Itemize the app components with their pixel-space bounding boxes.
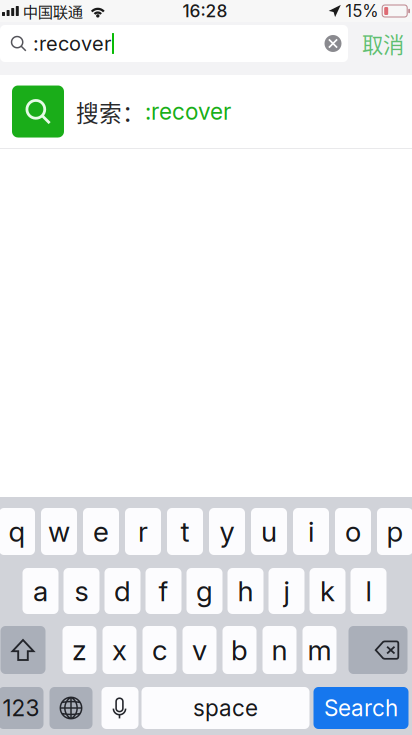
staticText: a: [33, 574, 48, 608]
button[interactable]: m: [302, 626, 336, 674]
staticText: 取消: [362, 28, 404, 59]
staticText: p: [386, 515, 403, 548]
button[interactable]: o: [335, 508, 371, 555]
staticText: b: [231, 633, 248, 667]
button[interactable]: Delete: [348, 626, 407, 674]
button[interactable]: w: [41, 508, 77, 555]
staticText: d: [114, 574, 131, 608]
button[interactable]: a: [22, 568, 58, 614]
button[interactable]: z: [62, 626, 96, 674]
button[interactable]: h: [227, 568, 263, 614]
staticText: l: [365, 574, 371, 608]
button[interactable]: Clear text: [318, 26, 348, 60]
staticText: j: [283, 574, 289, 608]
staticText: g: [196, 574, 213, 608]
button[interactable]: c: [142, 626, 176, 674]
staticText: 搜索：: [76, 95, 145, 128]
staticText: c: [152, 633, 167, 667]
button[interactable]: e: [83, 508, 119, 555]
button[interactable]: k: [309, 568, 345, 614]
button[interactable]: j: [268, 568, 304, 614]
button[interactable]: f: [145, 568, 181, 614]
staticText: u: [261, 515, 277, 548]
button[interactable]: q: [0, 508, 35, 555]
button[interactable]: p: [377, 508, 412, 555]
button[interactable]: v: [182, 626, 216, 674]
staticText: 中国联通: [23, 0, 83, 22]
staticText: x: [112, 633, 127, 667]
staticText: i: [308, 515, 314, 548]
staticText: v: [192, 633, 207, 667]
staticText: s: [74, 574, 88, 608]
staticText: w: [48, 515, 70, 548]
staticText: o: [345, 515, 361, 548]
button[interactable]: g: [186, 568, 222, 614]
button[interactable]: Shift: [0, 626, 45, 674]
staticText: n: [271, 633, 287, 667]
staticText: 15%: [345, 1, 378, 21]
button[interactable]: x: [102, 626, 136, 674]
staticText: Search: [324, 694, 398, 722]
staticText: r: [138, 515, 148, 548]
staticText: space: [193, 694, 258, 722]
staticText: z: [72, 633, 87, 667]
button[interactable]: d: [104, 568, 140, 614]
staticText: f: [158, 574, 168, 608]
staticText: 123: [2, 694, 39, 722]
staticText: :recover: [33, 31, 111, 56]
button[interactable]: n: [262, 626, 296, 674]
staticText: t: [180, 515, 189, 548]
button[interactable]: 取消: [356, 25, 412, 62]
button[interactable]: r: [125, 508, 161, 555]
button[interactable]: space: [141, 687, 309, 729]
button[interactable]: Switch keyboard: [49, 687, 92, 729]
button[interactable]: s: [63, 568, 99, 614]
staticText: q: [8, 515, 25, 548]
staticText: y: [219, 515, 234, 548]
button[interactable]: 搜索：: [0, 75, 412, 148]
button[interactable]: y: [209, 508, 245, 555]
button[interactable]: t: [167, 508, 203, 555]
staticText: k: [320, 574, 335, 608]
staticText: h: [237, 574, 253, 608]
button[interactable]: b: [222, 626, 256, 674]
staticText: m: [307, 633, 331, 667]
button[interactable]: i: [293, 508, 329, 555]
button[interactable]: u: [251, 508, 287, 555]
button[interactable]: Dictate: [101, 687, 138, 729]
staticText: e: [93, 515, 109, 548]
button[interactable]: l: [350, 568, 386, 614]
staticText: :recover: [145, 98, 231, 125]
staticText: 16:28: [182, 0, 227, 21]
button[interactable]: Search: [313, 687, 408, 729]
button[interactable]: 123: [0, 687, 43, 729]
